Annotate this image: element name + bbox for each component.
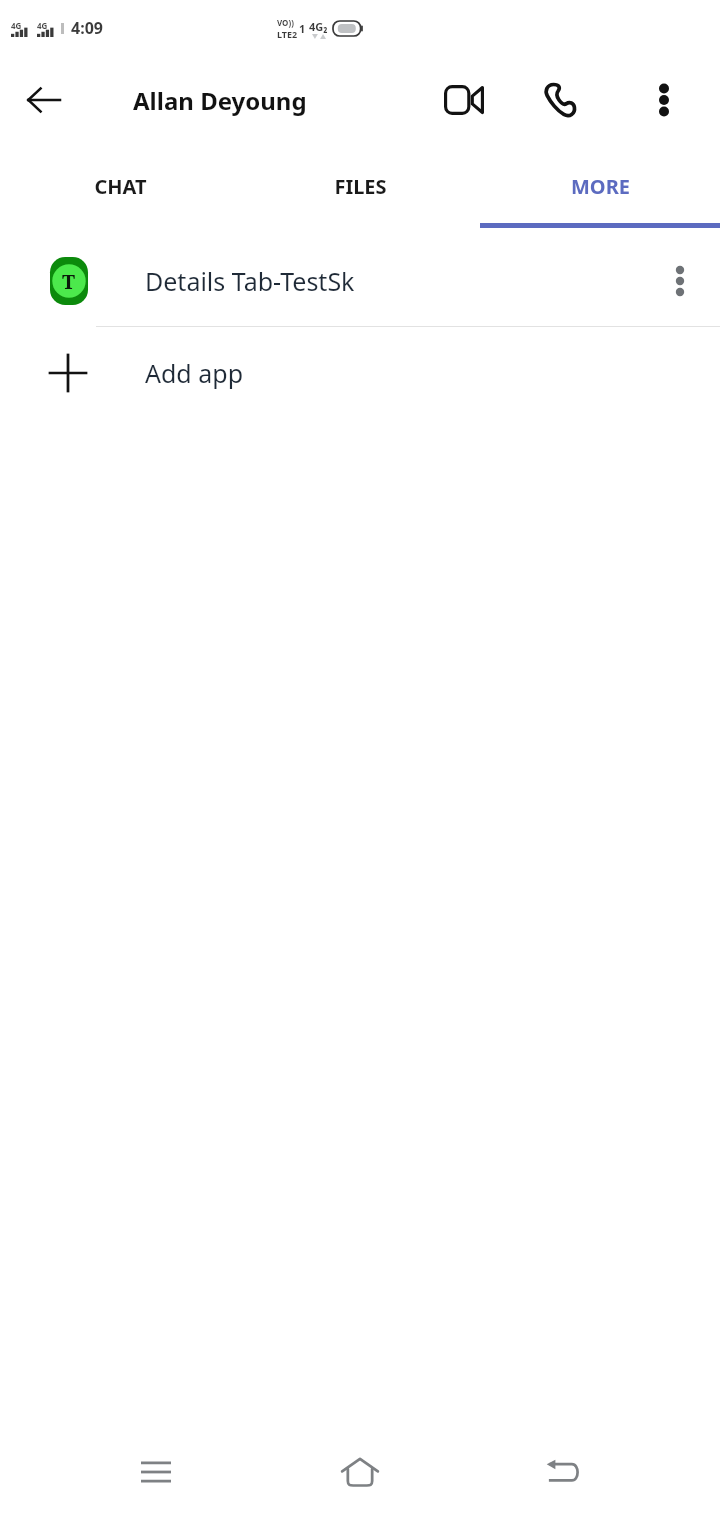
staticText: Details Tab-TestSk	[145, 264, 355, 298]
button[interactable]: T	[0, 236, 720, 326]
staticText: FILES	[334, 173, 387, 200]
staticText: 4G	[37, 20, 48, 31]
staticText: 4G₂	[309, 19, 328, 34]
staticText: 1	[299, 21, 306, 36]
button[interactable]: Back	[516, 1424, 612, 1520]
staticText: Allan Deyoung	[133, 84, 307, 117]
button[interactable]: Recent apps	[108, 1424, 204, 1520]
button[interactable]: Video call	[432, 68, 496, 132]
staticText: Add app	[145, 356, 244, 390]
staticText: CHAT	[94, 173, 147, 200]
button[interactable]: FILES	[240, 144, 480, 228]
button[interactable]: MORE	[480, 144, 720, 228]
button[interactable]: Home	[312, 1424, 408, 1520]
staticText: T	[62, 268, 76, 295]
button[interactable]: Back	[10, 66, 78, 134]
staticText: VO))	[277, 17, 294, 28]
staticText: LTE2	[277, 28, 298, 40]
staticText: 4:09	[71, 17, 103, 39]
staticText: MORE	[571, 173, 630, 200]
button[interactable]: Add app	[0, 327, 720, 419]
button[interactable]: CHAT	[0, 144, 240, 228]
button[interactable]: More options	[634, 70, 694, 130]
button[interactable]: Call	[528, 68, 592, 132]
button[interactable]: App options	[648, 249, 712, 313]
staticText: 4G	[11, 20, 22, 31]
